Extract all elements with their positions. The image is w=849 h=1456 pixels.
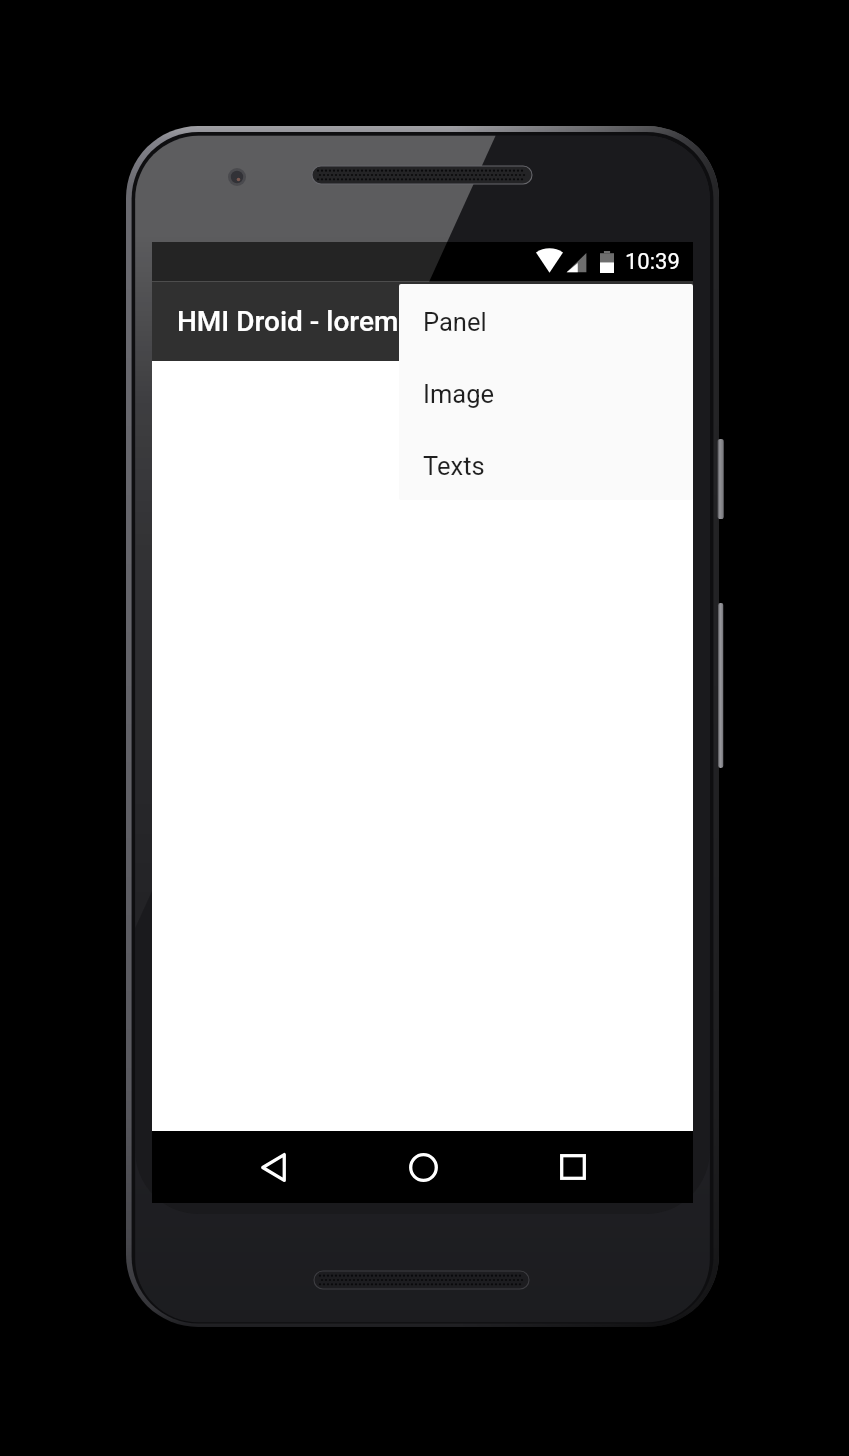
staticText: 10:39 — [625, 249, 680, 275]
button[interactable]: Recents — [498, 1131, 648, 1203]
button[interactable]: Texts — [399, 428, 693, 500]
button[interactable]: Image — [399, 356, 693, 428]
button[interactable]: Home — [348, 1131, 498, 1203]
button[interactable]: Back — [198, 1131, 348, 1203]
staticText: HMI Droid - lorem ipsum — [177, 305, 483, 338]
staticText: Panel — [423, 307, 487, 337]
button[interactable]: Panel — [399, 284, 693, 356]
staticText: Image — [423, 379, 495, 409]
staticText: Texts — [423, 451, 485, 481]
